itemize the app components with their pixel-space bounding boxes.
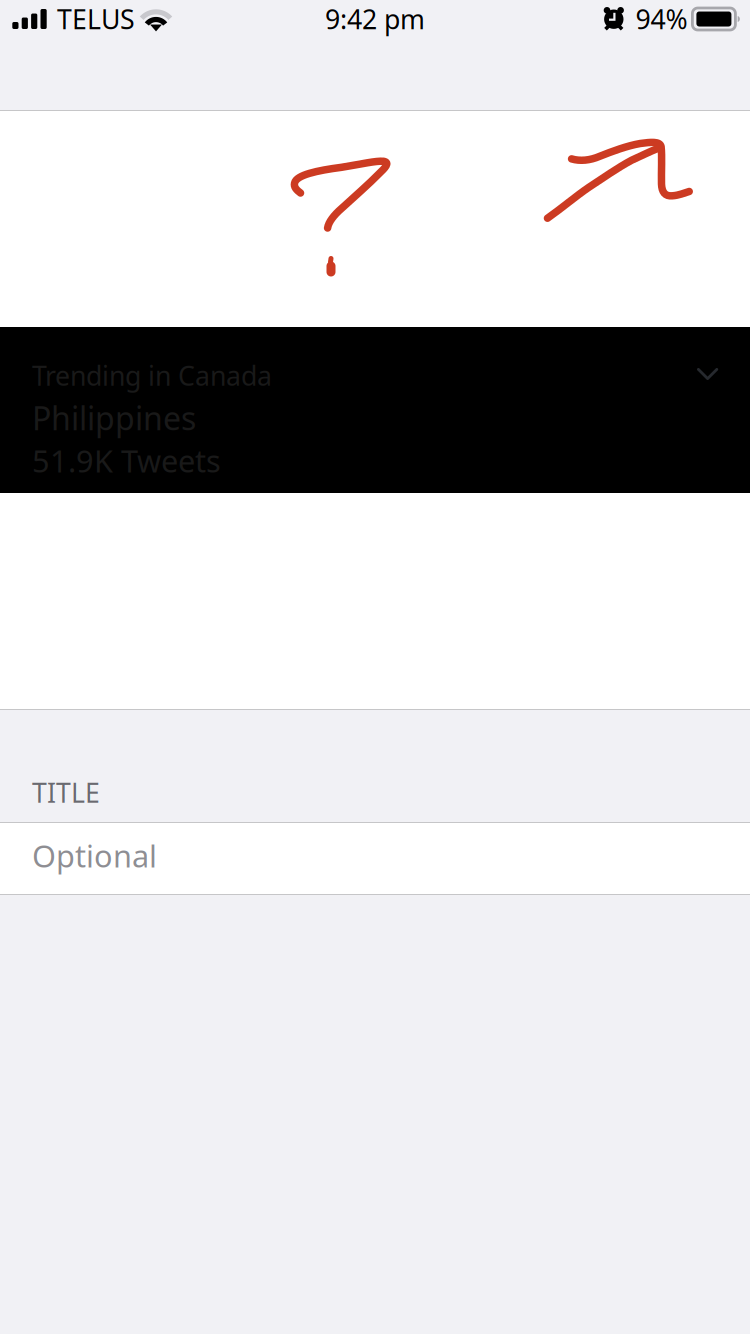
- staticText: Trending in Canada: [32, 358, 272, 393]
- button[interactable]: Optional: [0, 823, 750, 894]
- staticText: 9:42 pm: [325, 1, 425, 37]
- staticText: Philippines: [32, 396, 196, 439]
- staticText: 94%: [635, 1, 687, 37]
- staticText: Optional: [32, 835, 157, 876]
- staticText: 51.9K Tweets: [32, 440, 221, 481]
- button[interactable]: Trending in Canada: [0, 327, 750, 493]
- staticText: TELUS: [57, 1, 135, 37]
- staticText: TITLE: [32, 775, 100, 810]
